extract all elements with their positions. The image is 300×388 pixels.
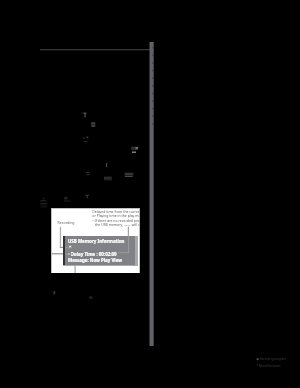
button[interactable]: Recording screen illustration — [51, 208, 140, 273]
button[interactable] — [63, 236, 138, 266]
